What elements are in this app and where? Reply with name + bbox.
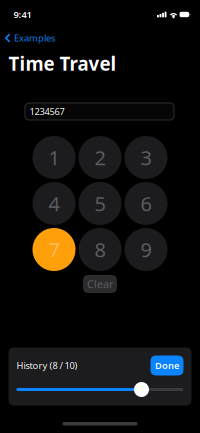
staticText: 6 bbox=[140, 190, 151, 217]
staticText: 7 bbox=[48, 236, 59, 263]
staticText: 2 bbox=[94, 144, 105, 171]
button[interactable]: 6 bbox=[124, 182, 167, 225]
staticText: 1234567 bbox=[29, 105, 64, 118]
staticText: Done bbox=[155, 359, 179, 372]
button[interactable]: Clear bbox=[83, 275, 117, 293]
staticText: 4 bbox=[48, 190, 59, 217]
staticText: 9 bbox=[140, 236, 151, 263]
button[interactable]: 1 bbox=[32, 136, 75, 179]
button[interactable]: Done bbox=[150, 355, 183, 375]
staticText: 8 bbox=[94, 236, 105, 263]
button[interactable]: 7 bbox=[32, 228, 75, 271]
staticText: History (8 / 10) bbox=[16, 359, 77, 372]
staticText: 5 bbox=[94, 190, 105, 217]
staticText: Examples bbox=[14, 32, 55, 44]
button[interactable]: 8 bbox=[78, 228, 121, 271]
staticText: 1 bbox=[48, 144, 59, 171]
button[interactable]: 2 bbox=[78, 136, 121, 179]
button[interactable]: 3 bbox=[124, 136, 167, 179]
button[interactable]: 9 bbox=[124, 228, 167, 271]
button[interactable]: 4 bbox=[32, 182, 75, 225]
staticText: Time Travel bbox=[8, 51, 116, 76]
staticText: 9:41 bbox=[13, 8, 31, 21]
button[interactable]: 5 bbox=[78, 182, 121, 225]
staticText: Clear bbox=[87, 277, 113, 291]
staticText: 3 bbox=[140, 144, 151, 171]
button[interactable]: Examples bbox=[0, 29, 200, 47]
